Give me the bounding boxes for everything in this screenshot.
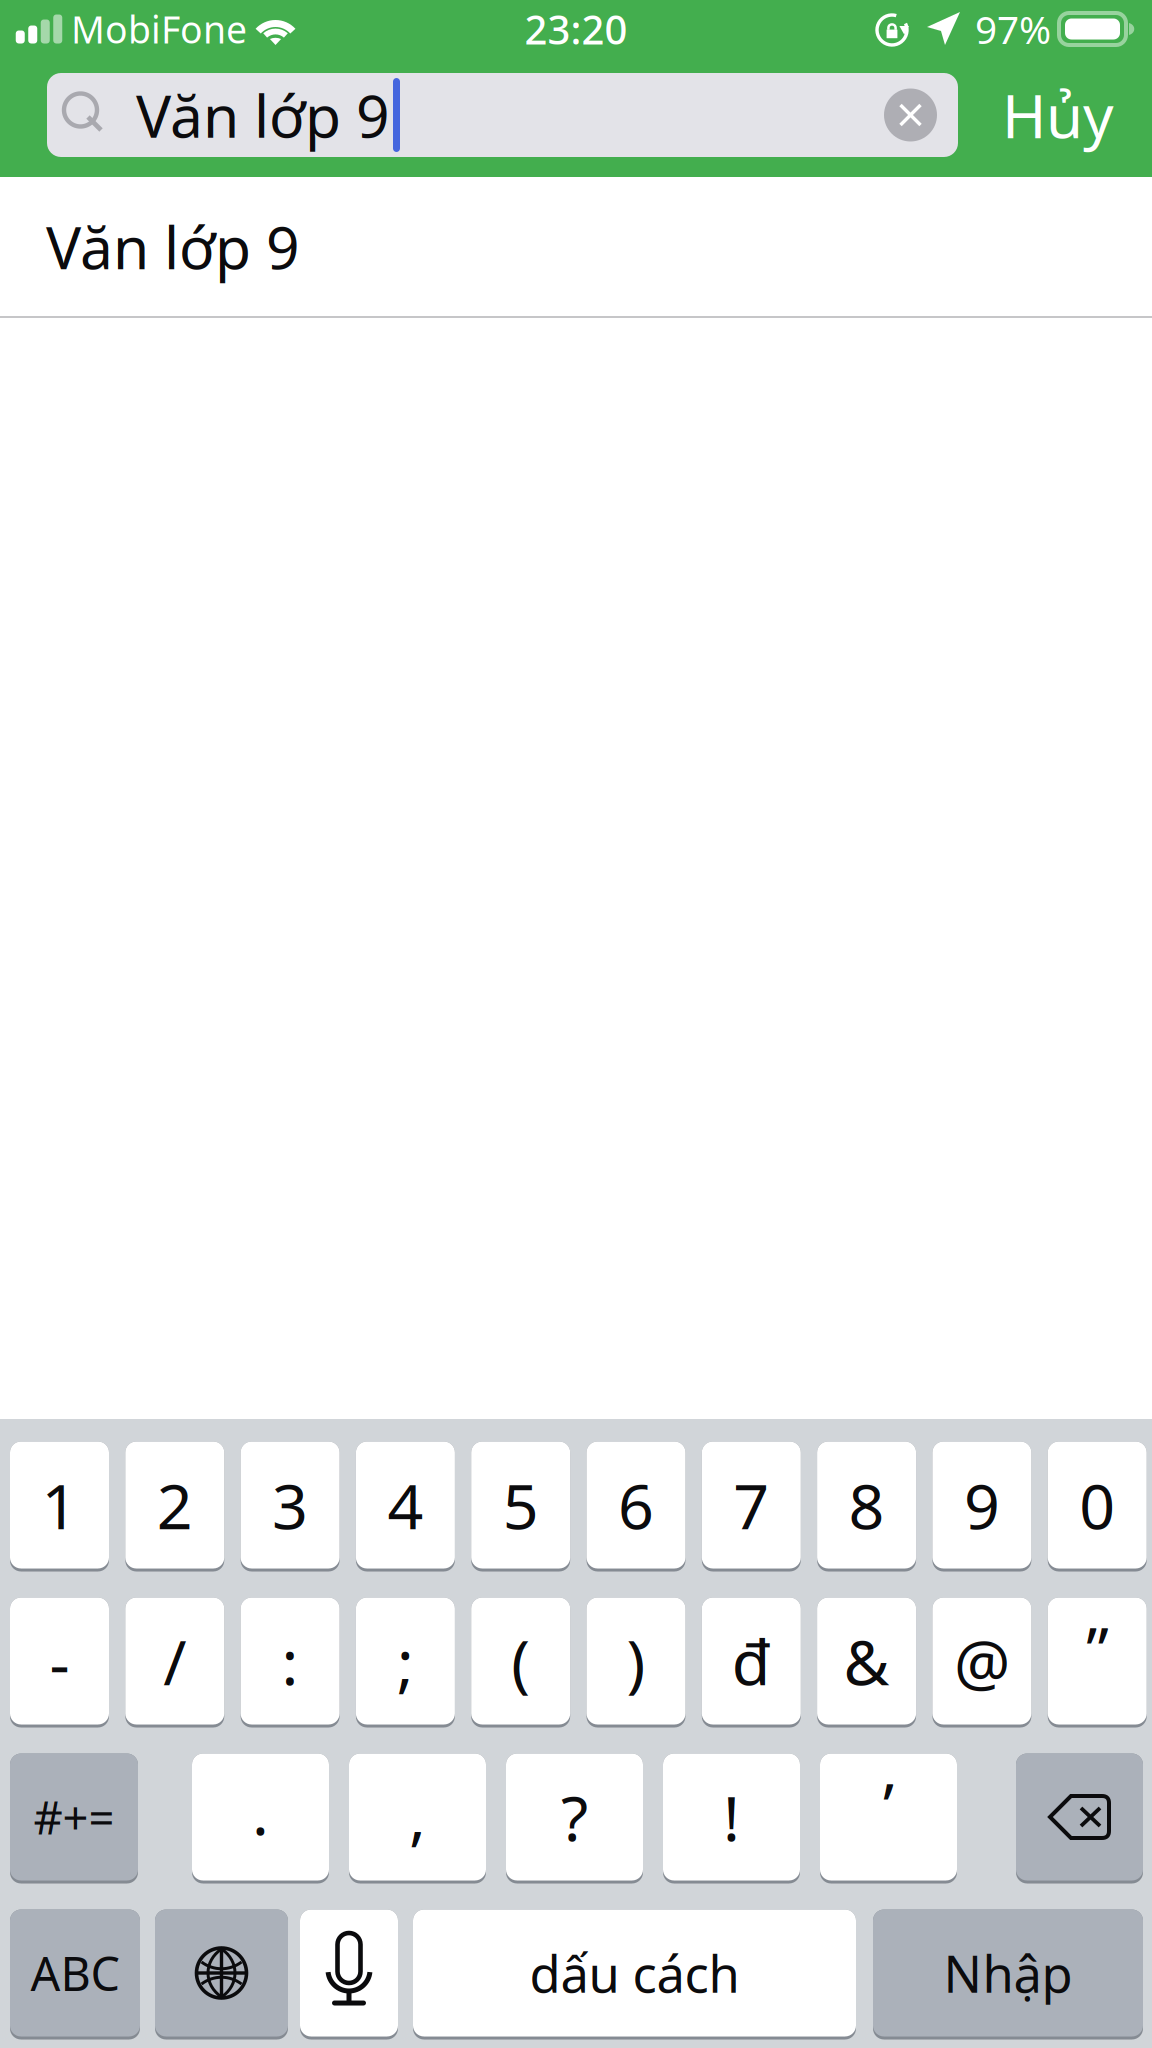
button[interactable]: ’ bbox=[0, 1419, 1152, 2048]
staticText: @ bbox=[954, 1619, 1010, 1703]
button[interactable]: Văn lớp 9 bbox=[0, 177, 1152, 316]
staticText: , bbox=[409, 1773, 426, 1857]
staticText: 9 bbox=[964, 1463, 1000, 1547]
button[interactable]: 7 bbox=[0, 1419, 1152, 2048]
button[interactable]: 4 bbox=[0, 1419, 1152, 2048]
staticText: & bbox=[844, 1619, 890, 1703]
button[interactable]: Nhập bbox=[0, 1419, 1152, 2048]
staticText: ? bbox=[561, 1775, 588, 1859]
button[interactable]: ABC bbox=[0, 1419, 1152, 2048]
button[interactable]: đ bbox=[0, 1419, 1152, 2048]
staticText: : bbox=[282, 1619, 299, 1703]
staticText: ABC bbox=[30, 1942, 119, 2004]
button[interactable]: ” bbox=[0, 1419, 1152, 2048]
staticText: 6 bbox=[618, 1463, 654, 1547]
button[interactable]: ; bbox=[0, 1419, 1152, 2048]
button[interactable]: Next keyboard bbox=[0, 1419, 1152, 2048]
staticText: 2 bbox=[157, 1463, 193, 1547]
button[interactable]: 5 bbox=[0, 1419, 1152, 2048]
staticText: 7 bbox=[733, 1463, 769, 1547]
button[interactable]: : bbox=[0, 1419, 1152, 2048]
button[interactable]: , bbox=[0, 1419, 1152, 2048]
staticText: #+= bbox=[33, 1787, 114, 1847]
staticText: 5 bbox=[503, 1463, 539, 1547]
button[interactable]: @ bbox=[0, 1419, 1152, 2048]
staticText: Văn lớp 9 bbox=[46, 207, 300, 285]
staticText: Văn lớp 9 bbox=[136, 76, 390, 154]
button[interactable]: 8 bbox=[0, 1419, 1152, 2048]
button[interactable]: 2 bbox=[0, 1419, 1152, 2048]
staticText: 97% bbox=[975, 3, 1051, 55]
button[interactable]: 1 bbox=[0, 1419, 1152, 2048]
button[interactable]: 0 bbox=[0, 1419, 1152, 2048]
staticText: dấu cách bbox=[529, 1939, 739, 2007]
button[interactable]: Dictate bbox=[0, 1419, 1152, 2048]
staticText: ” bbox=[1086, 1606, 1108, 1690]
button[interactable]: & bbox=[0, 1419, 1152, 2048]
staticText: ; bbox=[397, 1619, 414, 1703]
staticText: 4 bbox=[387, 1463, 423, 1547]
staticText: / bbox=[163, 1619, 186, 1703]
staticText: ! bbox=[723, 1775, 740, 1859]
staticText: đ bbox=[732, 1619, 771, 1703]
staticText: 1 bbox=[41, 1463, 77, 1547]
staticText: ) bbox=[626, 1619, 645, 1703]
button[interactable]: 9 bbox=[0, 1419, 1152, 2048]
staticText: MobiFone bbox=[71, 4, 247, 54]
staticText: 0 bbox=[1079, 1463, 1115, 1547]
button[interactable]: ? bbox=[0, 1419, 1152, 2048]
button[interactable]: #+= bbox=[0, 1419, 1152, 2048]
button[interactable]: . bbox=[0, 1419, 1152, 2048]
button[interactable]: / bbox=[0, 1419, 1152, 2048]
button[interactable]: Delete bbox=[0, 1419, 1152, 2048]
button[interactable]: 6 bbox=[0, 1419, 1152, 2048]
staticText: 8 bbox=[849, 1463, 885, 1547]
staticText: . bbox=[252, 1769, 269, 1853]
staticText: ( bbox=[511, 1619, 530, 1703]
button[interactable]: ! bbox=[0, 1419, 1152, 2048]
button[interactable]: - bbox=[0, 1419, 1152, 2048]
staticText: 3 bbox=[272, 1463, 308, 1547]
button[interactable]: 3 bbox=[0, 1419, 1152, 2048]
button[interactable]: ( bbox=[0, 1419, 1152, 2048]
button[interactable]: ) bbox=[0, 1419, 1152, 2048]
staticText: Hủy bbox=[1002, 75, 1114, 155]
staticText: 23:20 bbox=[524, 2, 627, 55]
button[interactable]: Hủy bbox=[958, 73, 1128, 157]
button[interactable]: Clear search text bbox=[884, 88, 958, 141]
button[interactable]: dấu cách bbox=[0, 1419, 1152, 2048]
staticText: ’ bbox=[883, 1762, 894, 1846]
staticText: - bbox=[49, 1620, 69, 1704]
staticText: Nhập bbox=[943, 1939, 1072, 2007]
